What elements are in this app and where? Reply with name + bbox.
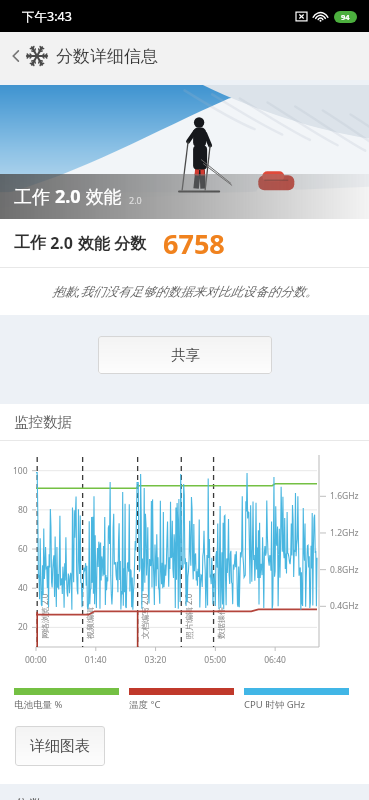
staticText: 电池电量 %	[14, 698, 63, 711]
staticText: 监控数据	[14, 413, 72, 431]
staticText: 工作	[14, 184, 55, 209]
staticText: 2.0	[129, 194, 142, 206]
staticText: 工作	[14, 233, 46, 253]
staticText: 共享	[171, 346, 200, 364]
staticText: 效能	[81, 184, 122, 209]
staticText: 详细图表	[30, 737, 90, 756]
staticText: CPU 时钟 GHz	[244, 698, 306, 711]
button[interactable]: 返回	[8, 45, 48, 67]
button[interactable]: 详细图表	[15, 726, 105, 766]
button[interactable]: 共享	[98, 336, 272, 374]
staticText: 下午3:43	[22, 8, 72, 25]
staticText: 6758	[163, 225, 225, 262]
staticText: 分数	[14, 796, 44, 800]
staticText: 效能 分数	[78, 232, 147, 254]
staticText: 抱歉,我们没有足够的数据来对比此设备的分数。	[52, 283, 318, 300]
staticText: 2.0	[55, 184, 81, 209]
staticText: 温度 °C	[129, 698, 161, 711]
staticText: 分数详细信息	[56, 46, 158, 67]
staticText: 94	[341, 12, 350, 22]
staticText: 2.0	[46, 232, 78, 254]
